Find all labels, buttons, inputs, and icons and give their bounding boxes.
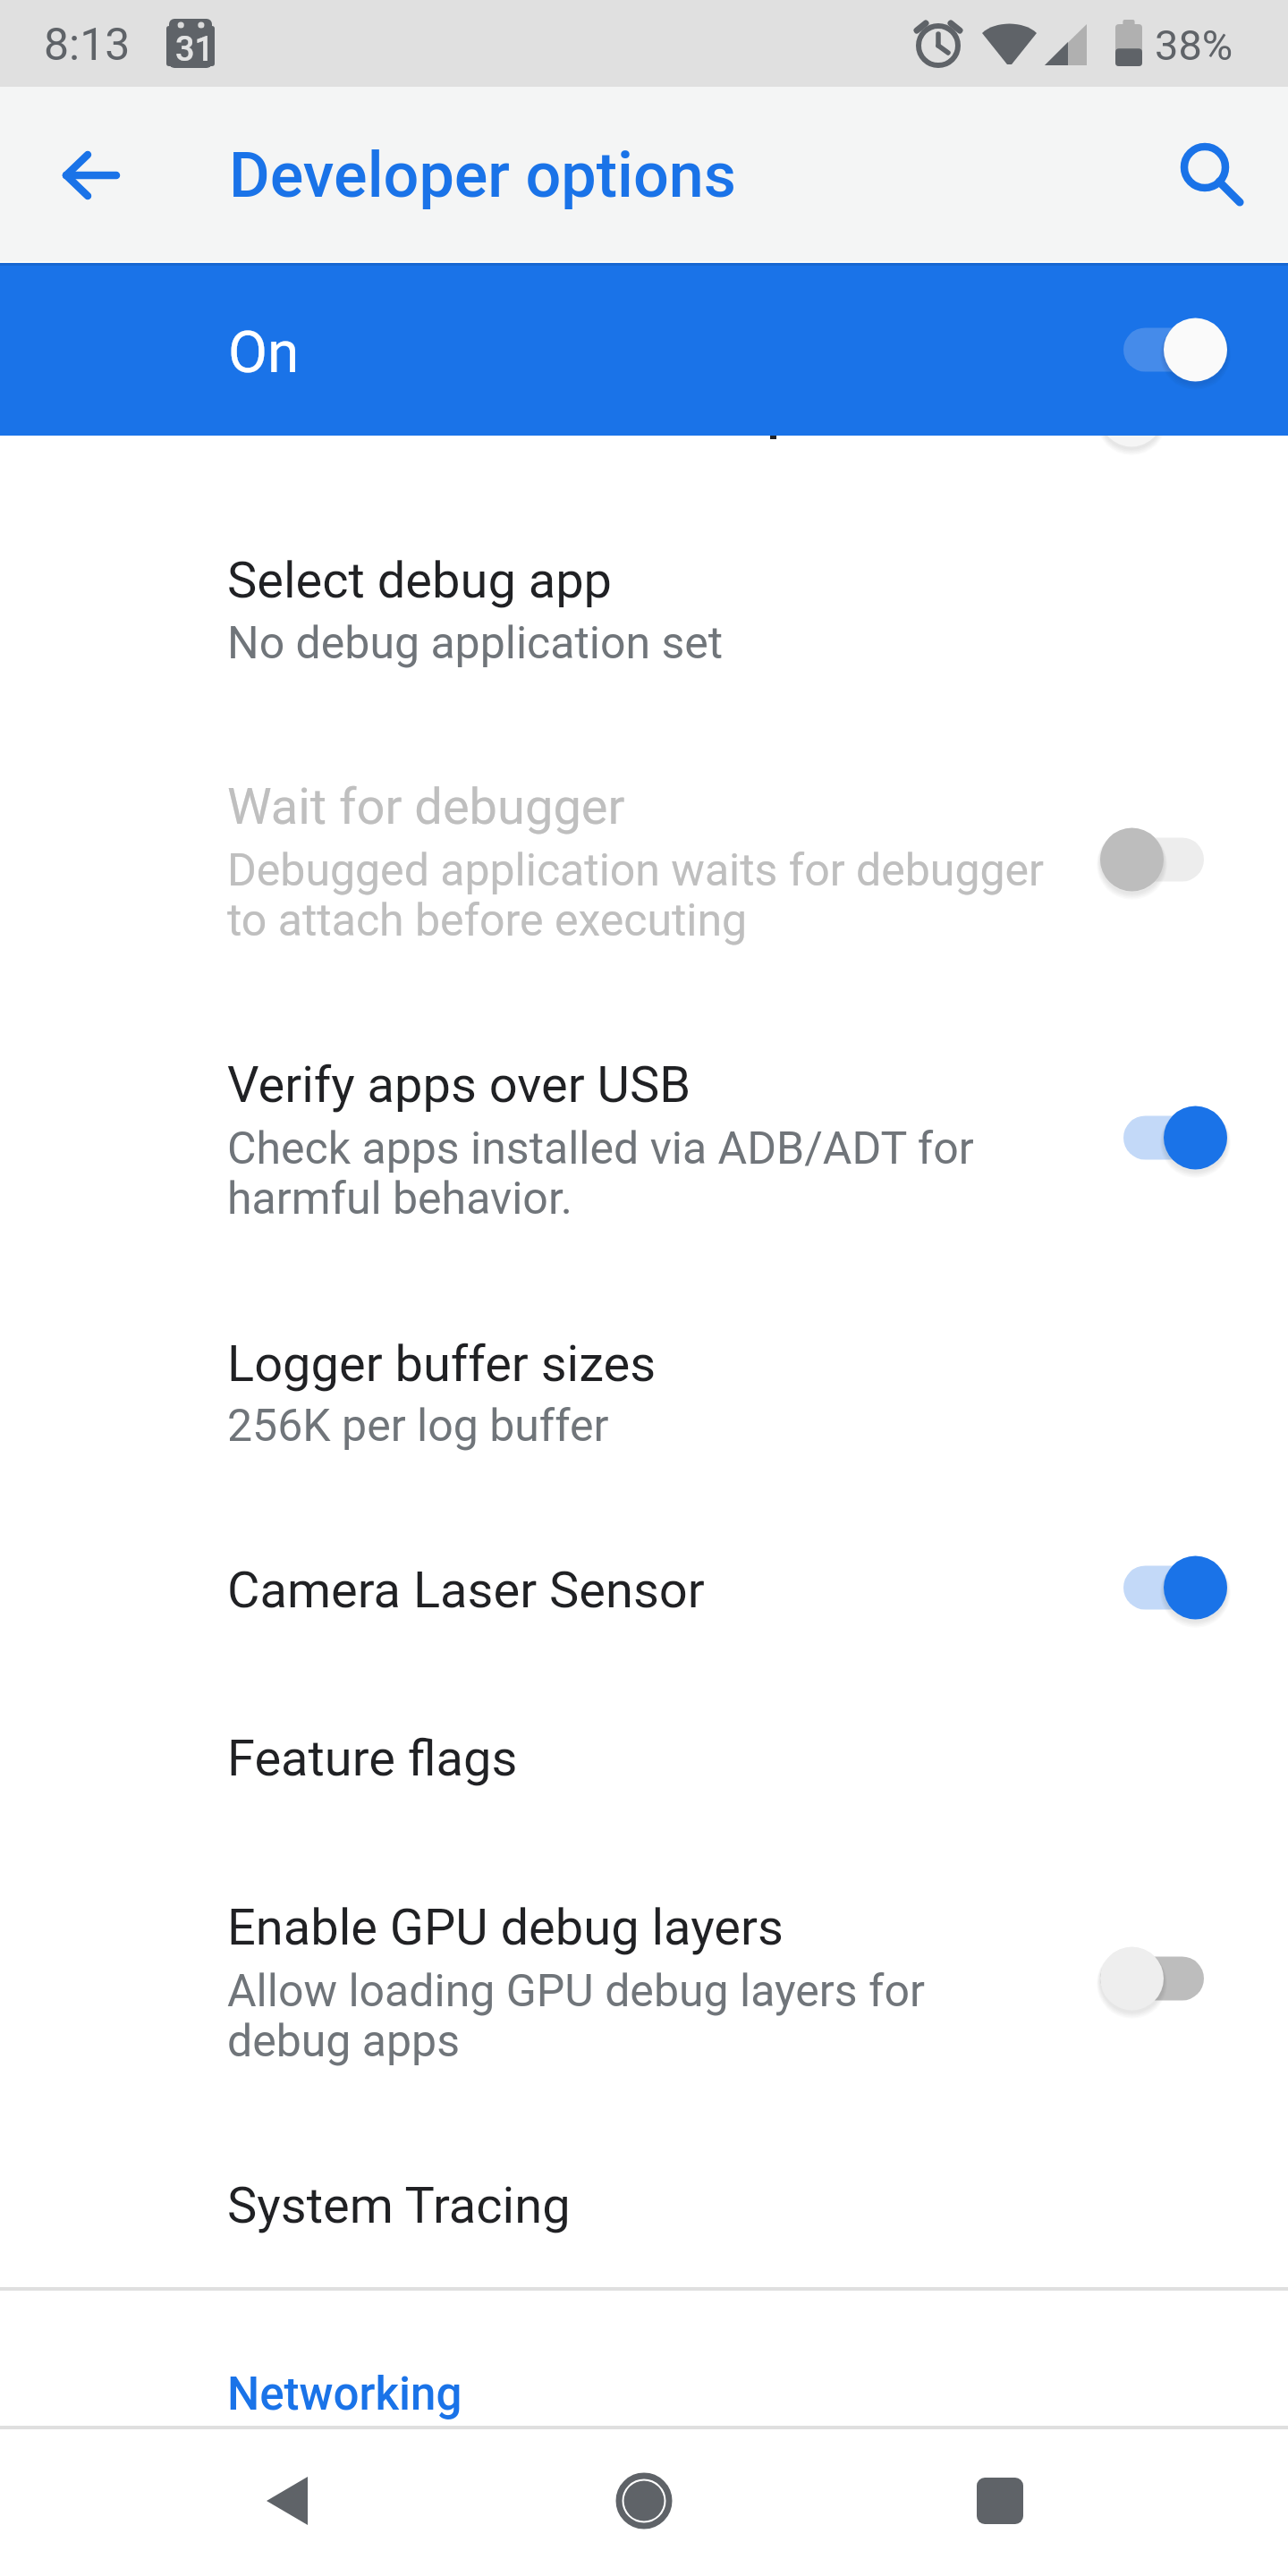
button[interactable] [0,2138,1288,2276]
button[interactable] [0,707,1288,930]
button[interactable]: Enable GPU debug layers [1055,1916,1252,2041]
button[interactable] [0,263,1288,436]
button[interactable] [0,1690,1288,1829]
staticText: Allow loading GPU debug layers for debug… [227,1965,1048,2068]
staticText: 8:13 [44,19,131,72]
staticText: Check apps installed via ADB/ADT for har… [227,1123,1048,1225]
button[interactable] [0,1521,1288,1659]
staticText: Enable GPU debug layers [227,1898,784,1957]
button[interactable]: Wait for debugger [1055,797,1252,922]
staticText: Networking [227,2368,462,2421]
staticText: 31 [175,30,215,70]
button[interactable] [0,1270,1288,1436]
button[interactable] [0,456,1288,622]
staticText: System Tracing [227,2176,571,2235]
staticText: 38% [1155,21,1233,70]
staticText: Feature flags [227,1729,518,1788]
staticText: Debugged application waits for debugger … [227,844,1048,947]
button[interactable]: Navigate up [18,104,161,247]
button[interactable] [0,984,1288,1207]
staticText: Camera Laser Sensor [227,1561,705,1620]
button[interactable]: Home [563,2427,724,2574]
staticText: Select debug app [227,551,613,610]
button[interactable]: Back [207,2427,368,2574]
button[interactable]: Camera Laser Sensor [1055,1525,1252,1650]
staticText: On [228,319,300,386]
button[interactable] [0,1843,1288,2066]
button[interactable]: Search [1133,104,1276,247]
staticText: Developer options [229,139,736,212]
staticText: Logger buffer sizes [227,1335,657,1394]
staticText: Verify apps over USB [227,1055,691,1114]
staticText: Wait for debugger [227,777,625,836]
button[interactable]: Developer options on [1055,287,1252,412]
staticText: 256K per log buffer [227,1400,1048,1453]
button[interactable]: Verify apps over USB [1055,1075,1252,1200]
staticText: No debug application set [227,617,1048,670]
button[interactable]: Recent apps [919,2427,1080,2574]
